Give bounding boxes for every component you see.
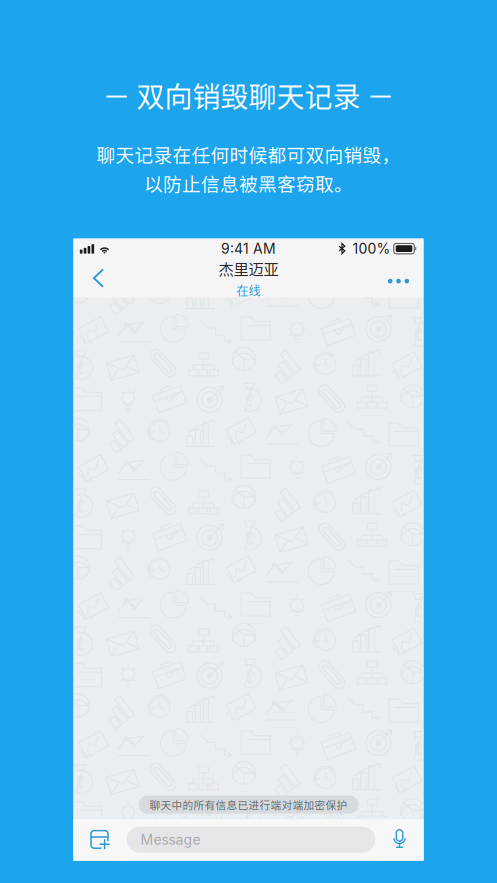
staticText: － 双向销毁聊天记录 －	[102, 75, 394, 115]
button[interactable]: Record voice message	[375, 819, 423, 861]
staticText: 在线	[236, 281, 260, 299]
button[interactable]: More options	[378, 259, 418, 298]
button[interactable]: Add sticker	[73, 819, 126, 861]
staticText: Message	[140, 831, 200, 848]
staticText: 9:41 AM	[221, 240, 276, 257]
staticText: 100%	[352, 240, 390, 257]
button[interactable]: Back	[78, 259, 118, 298]
staticText: 以防止信息被黑客窃取。	[144, 170, 353, 197]
staticText: 聊天记录在任何时候都可双向销毁，	[96, 140, 400, 167]
staticText: 聊天中的所有信息已进行端对端加密保护	[149, 797, 347, 812]
staticText: 杰里迈亚	[218, 257, 278, 279]
